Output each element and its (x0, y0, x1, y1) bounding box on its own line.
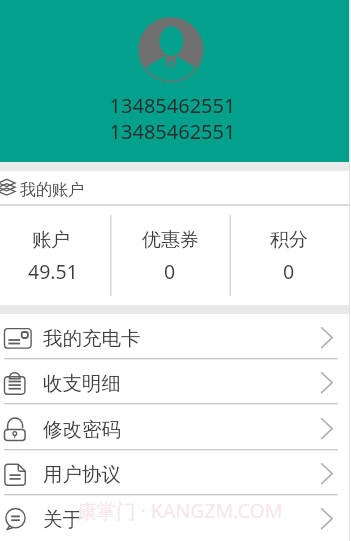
button[interactable]: 积分 (229, 206, 349, 306)
staticText: 关于 (43, 507, 82, 532)
staticText: 49.51 (28, 258, 78, 285)
staticText: 优惠券 (142, 228, 199, 252)
button[interactable]: 关于 (0, 495, 351, 540)
staticText: 康掌门 · KANGZM.COM (77, 497, 283, 524)
staticText: 0 (283, 258, 295, 285)
button[interactable]: 账户 (0, 206, 111, 306)
staticText: 13485462551 13485462551 (0, 92, 348, 145)
button[interactable]: 我的充电卡 (0, 314, 351, 359)
staticText: 我的账户 (20, 180, 84, 200)
staticText: 我的充电卡 (43, 326, 141, 351)
button[interactable]: 优惠券 (110, 206, 230, 306)
staticText: 0 (164, 258, 176, 285)
staticText: 收支明细 (43, 371, 121, 396)
button[interactable]: 修改密码 (0, 405, 351, 450)
staticText: 修改密码 (43, 417, 121, 442)
staticText: 账户 (32, 228, 70, 252)
button[interactable]: 我的账户 (0, 171, 351, 205)
staticText: 用户协议 (43, 462, 121, 487)
staticText: 积分 (270, 228, 308, 252)
button[interactable]: 收支明细 (0, 359, 351, 404)
button[interactable]: 用户协议 (0, 450, 351, 495)
